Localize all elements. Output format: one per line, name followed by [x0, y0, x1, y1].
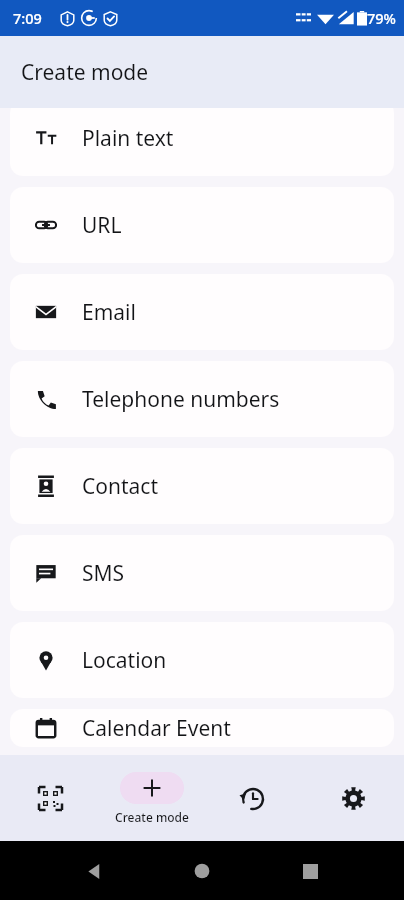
button[interactable]: URL — [10, 187, 394, 263]
button[interactable]: Back — [74, 851, 114, 891]
staticText: Email — [82, 298, 136, 327]
staticText: Telephone numbers — [82, 385, 280, 414]
button[interactable]: Calendar Event — [10, 709, 394, 747]
staticText: Location — [82, 646, 167, 675]
button[interactable]: Settings — [303, 755, 404, 841]
button[interactable]: Recent apps — [290, 851, 330, 891]
button[interactable]: Create mode — [101, 755, 202, 841]
staticText: 79% — [367, 8, 396, 28]
button[interactable]: Plain text — [10, 108, 394, 176]
staticText: Contact — [82, 472, 158, 501]
staticText: Calendar Event — [82, 714, 231, 743]
staticText: Create mode — [115, 809, 189, 825]
button[interactable]: History — [202, 755, 303, 841]
button[interactable]: Telephone numbers — [10, 361, 394, 437]
button[interactable]: Scan code — [0, 755, 101, 841]
button[interactable]: Home — [182, 851, 222, 891]
button[interactable]: Email — [10, 274, 394, 350]
button[interactable]: Contact — [10, 448, 394, 524]
staticText: URL — [82, 211, 122, 240]
staticText: Create mode — [21, 58, 149, 87]
button[interactable]: Location — [10, 622, 394, 698]
staticText: Plain text — [82, 124, 174, 153]
staticText: SMS — [82, 559, 125, 588]
button[interactable]: SMS — [10, 535, 394, 611]
staticText: 7:09 — [13, 8, 42, 28]
